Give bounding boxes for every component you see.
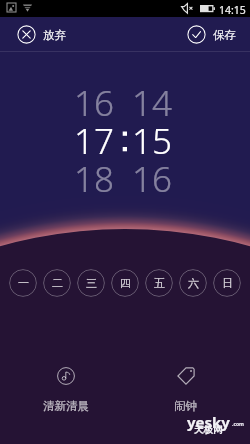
staticText: 六: [188, 276, 199, 290]
button[interactable]: 保存: [187, 17, 236, 52]
button[interactable]: Ringtone: [29, 363, 103, 417]
staticText: .com: [232, 421, 244, 428]
staticText: 14:15: [219, 3, 246, 17]
button[interactable]: 15: [127, 117, 177, 165]
button[interactable]: 三: [77, 269, 105, 297]
staticText: 保存: [213, 28, 236, 42]
other: Ringtone: [57, 367, 75, 385]
button[interactable]: 18: [69, 155, 119, 203]
button[interactable]: 17: [69, 117, 119, 165]
staticText: 天极网: [194, 424, 223, 436]
button[interactable]: 14: [127, 79, 177, 127]
button[interactable]: 六: [179, 269, 207, 297]
button[interactable]: 五: [145, 269, 173, 297]
button[interactable]: 16: [127, 155, 177, 203]
staticText: 清新清晨: [43, 399, 89, 413]
button[interactable]: 四: [111, 269, 139, 297]
button[interactable]: 一: [9, 269, 37, 297]
staticText: 四: [120, 276, 131, 290]
button[interactable]: 放弃: [17, 17, 66, 52]
staticText: 二: [52, 276, 63, 290]
button[interactable]: 16: [69, 79, 119, 127]
staticText: 放弃: [43, 28, 66, 42]
button[interactable]: 日: [213, 269, 241, 297]
staticText: 五: [154, 276, 165, 290]
staticText: yesky: [187, 412, 230, 432]
staticText: 三: [86, 276, 97, 290]
staticText: 一: [18, 276, 29, 290]
staticText: 闹钟: [174, 399, 197, 413]
button[interactable]: 二: [43, 269, 71, 297]
other: Label: [177, 367, 195, 385]
button[interactable]: Label: [160, 363, 211, 417]
staticText: 日: [222, 276, 233, 290]
